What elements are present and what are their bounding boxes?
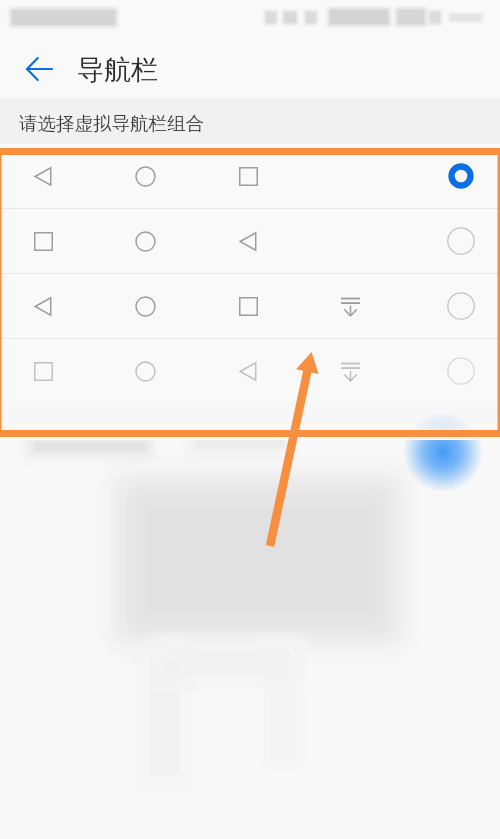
button[interactable] [0,339,500,403]
button[interactable] [0,144,500,208]
button[interactable] [0,274,500,338]
button[interactable]: Back [15,45,63,93]
staticText: 请选择虚拟导航栏组合 [19,112,204,135]
staticText: 导航栏 [77,53,158,87]
button[interactable] [0,209,500,273]
